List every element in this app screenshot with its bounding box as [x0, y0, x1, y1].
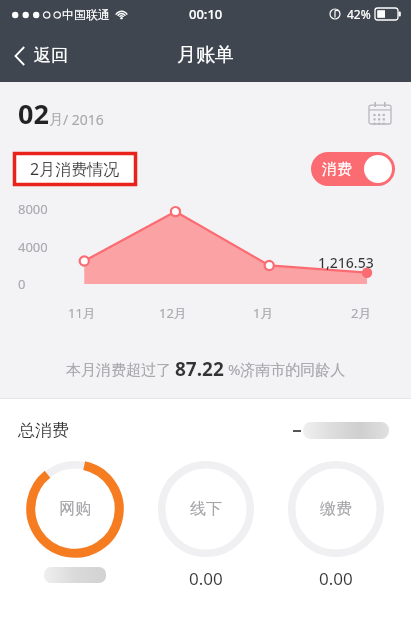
staticText: 2月消费情况 [30, 158, 120, 180]
staticText: 0.00 [319, 567, 353, 590]
button[interactable]: 总消费 [0, 399, 411, 461]
staticText: 87.22 [175, 356, 224, 382]
staticText: 总消费 [18, 420, 69, 441]
button[interactable]: 缴费 [280, 461, 392, 590]
staticText: 消费 [322, 160, 352, 179]
staticText: / 2016 [63, 110, 104, 129]
staticText: 网购 [59, 499, 91, 519]
button[interactable]: 线下 [150, 461, 262, 590]
button[interactable]: 网购 [19, 461, 131, 583]
staticText: 42% [347, 6, 371, 22]
staticText: 1月 [253, 304, 274, 322]
button[interactable]: 消费 [311, 152, 395, 186]
staticText: 11月 [68, 304, 96, 322]
staticText: 缴费 [320, 499, 352, 519]
staticText: 4000 [18, 238, 48, 256]
staticText: 本月消费超过了 [66, 359, 175, 379]
staticText: 12月 [159, 304, 187, 322]
staticText: 2月 [351, 304, 372, 322]
button[interactable]: Select month [365, 98, 395, 128]
staticText: 8000 [18, 200, 48, 218]
staticText: 返回 [34, 45, 68, 66]
staticText: 0.00 [189, 567, 223, 590]
staticText: 中国联通 [62, 7, 110, 22]
staticText: 月 [49, 111, 63, 129]
staticText: %济南市的同龄人 [224, 359, 346, 379]
staticText: 02 [18, 95, 49, 132]
staticText: 线下 [190, 499, 222, 519]
button[interactable]: 返回 [0, 37, 84, 74]
staticText: 1,216.53 [318, 253, 374, 272]
staticText: 0 [18, 275, 26, 293]
staticText: 00:10 [189, 5, 223, 23]
staticText: 月账单 [177, 43, 234, 67]
